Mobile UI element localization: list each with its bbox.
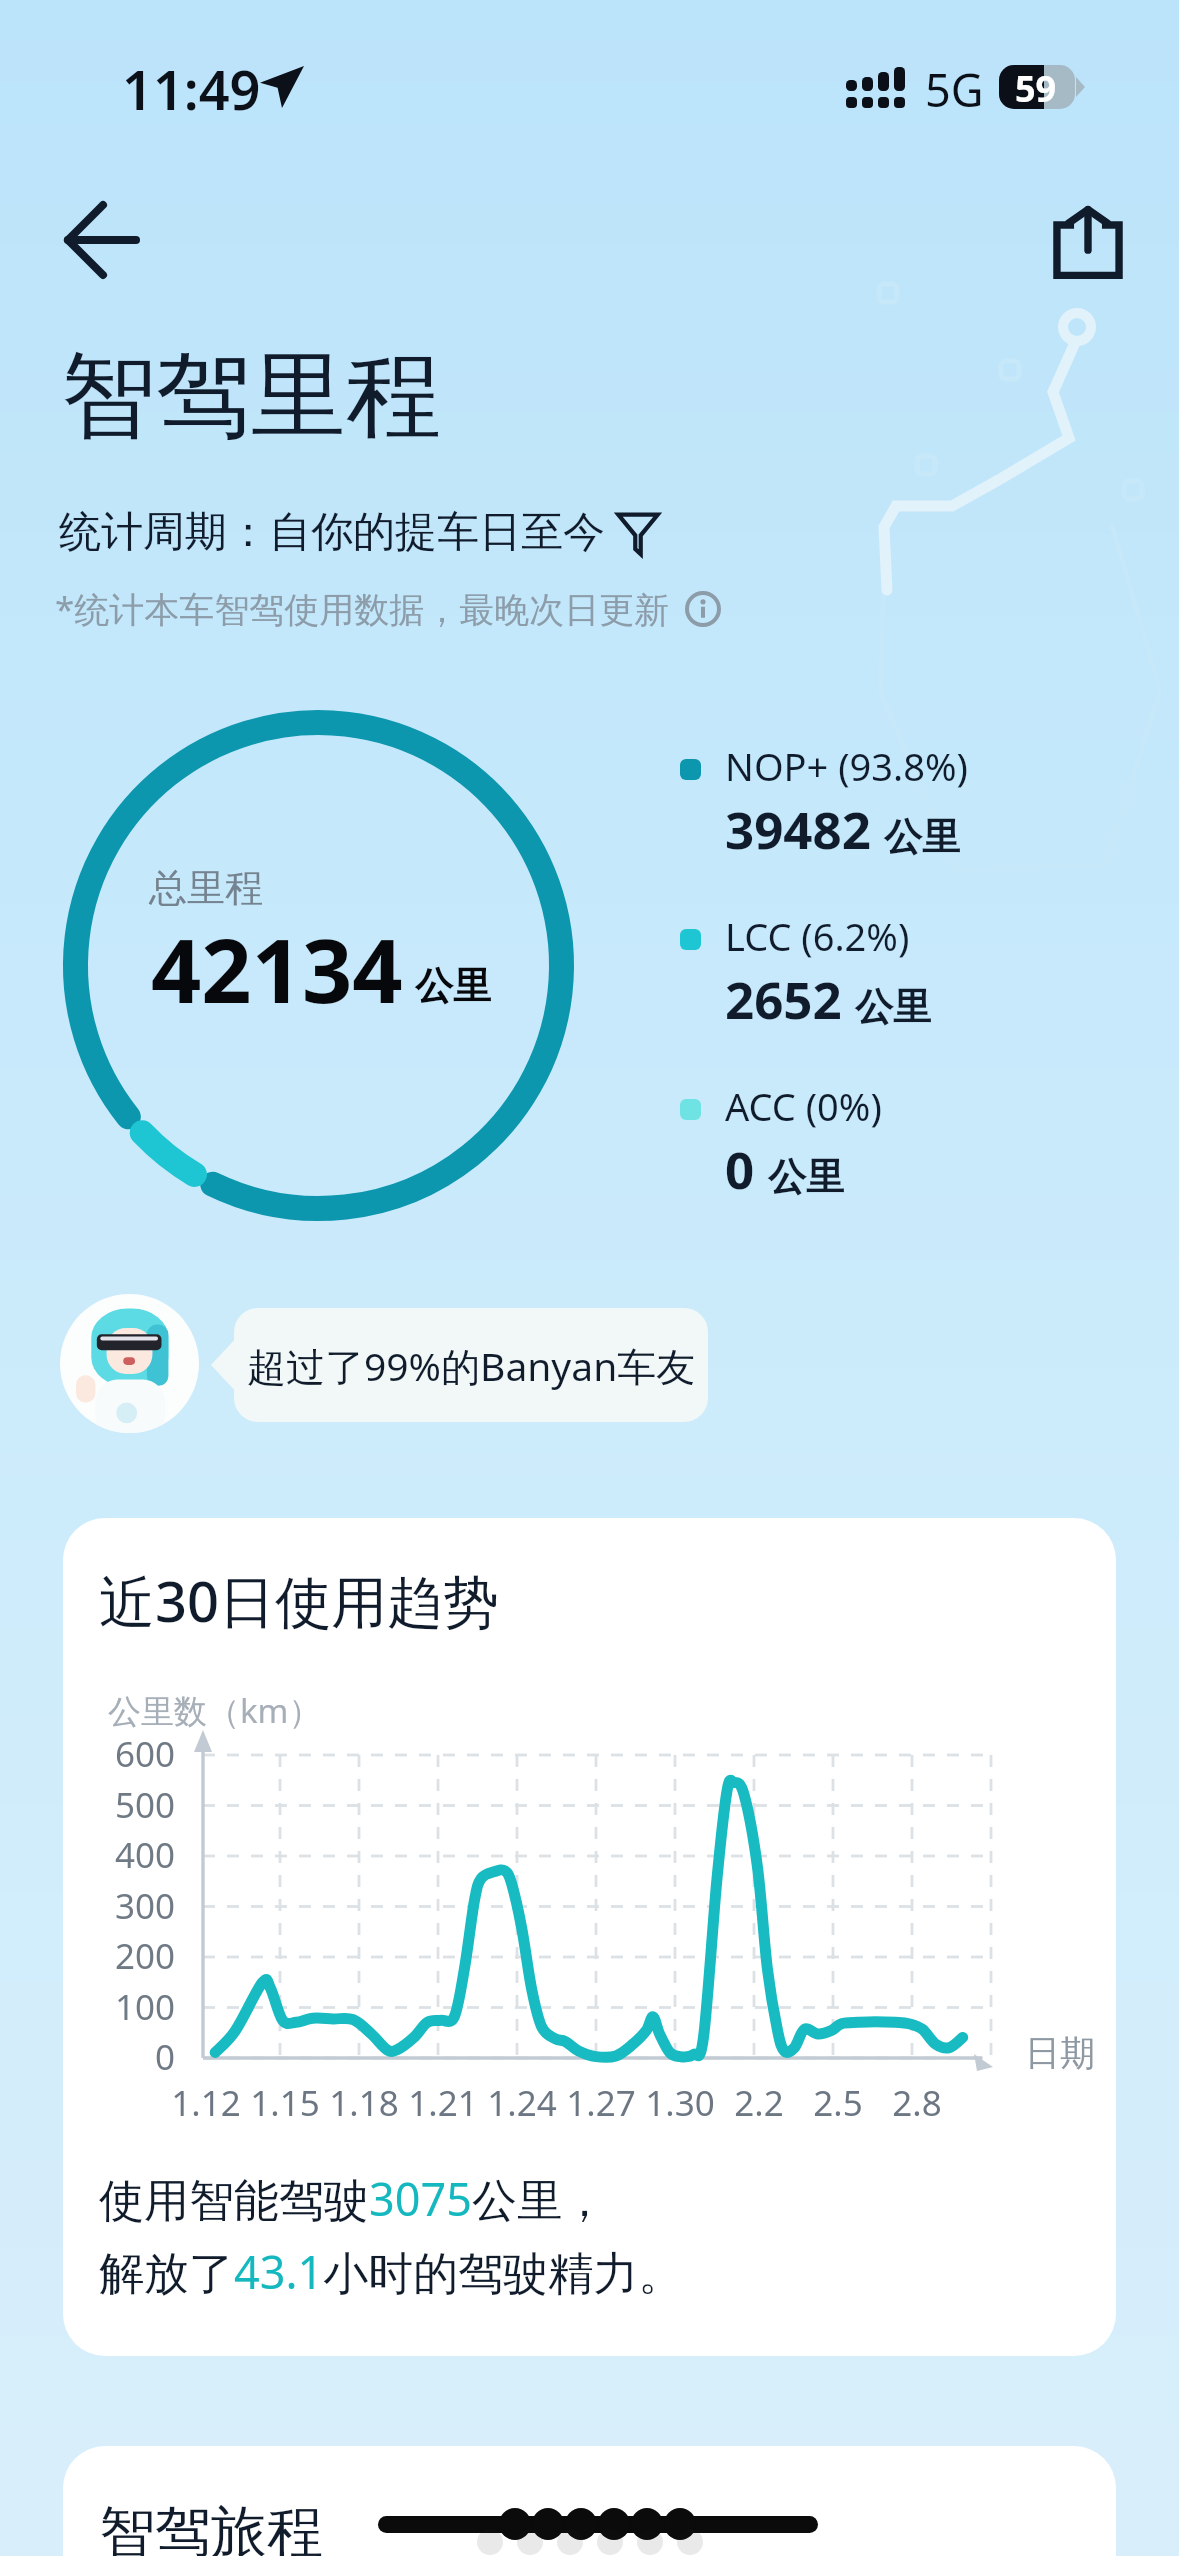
staticText: 近30日使用趋势 [99, 1562, 500, 1638]
staticText: 使用智能驾驶3075公里， [99, 2168, 607, 2229]
staticText: 日期 [1025, 2031, 1095, 2075]
button[interactable]: 统计周期：自你的提车日至今 [59, 506, 659, 559]
staticText: 总里程 [149, 864, 263, 912]
button[interactable]: Total mileage chart [63, 710, 574, 1221]
staticText: 39482 [725, 794, 871, 863]
staticText: 42134 [151, 909, 403, 1029]
staticText: 1.12 [151, 2079, 261, 2127]
staticText: 0 [75, 2033, 175, 2081]
button[interactable]: 超过了99%的Banyan车友 [234, 1308, 708, 1422]
button[interactable]: Share [1043, 193, 1133, 283]
staticText: 59 [1015, 64, 1057, 108]
staticText: 公里数（km） [108, 1688, 322, 1733]
staticText: *统计本车智驾使用数据，最晚次日更新 [55, 585, 670, 633]
staticText: 公里 [768, 1153, 844, 1201]
staticText: 公里 [855, 983, 931, 1031]
staticText: 1.24 [467, 2079, 577, 2127]
staticText: NOP+ (93.8%) [725, 740, 968, 792]
staticText: 11:49 [122, 52, 261, 126]
staticText: 公里 [884, 813, 960, 861]
button[interactable]: Back [48, 185, 158, 295]
staticText: 300 [75, 1882, 175, 1930]
button[interactable]: 近30日使用趋势 [63, 1518, 1116, 2356]
staticText: 0 [725, 1134, 755, 1203]
button[interactable]: LCC (6.2%) [680, 910, 931, 1033]
staticText: LCC (6.2%) [725, 910, 910, 962]
staticText: 2.8 [862, 2079, 972, 2127]
staticText: 100 [75, 1983, 175, 2031]
staticText: 400 [75, 1831, 175, 1879]
staticText: 200 [75, 1932, 175, 1980]
staticText: 公里 [415, 962, 491, 1010]
button[interactable]: NOP+ (93.8%) [680, 740, 968, 863]
button[interactable]: ACC (0%) [680, 1080, 882, 1203]
staticText: 统计周期：自你的提车日至今 [59, 506, 605, 559]
staticText: 智驾里程 [61, 337, 441, 457]
staticText: 智驾旅程 [99, 2497, 323, 2556]
staticText: 2.5 [783, 2079, 893, 2127]
staticText: 2652 [725, 964, 842, 1033]
staticText: 1.15 [230, 2079, 340, 2127]
staticText: 解放了43.1小时的驾驶精力。 [99, 2241, 684, 2302]
staticText: 1.21 [388, 2079, 498, 2127]
staticText: 500 [75, 1781, 175, 1829]
staticText: 2.2 [704, 2079, 814, 2127]
staticText: 600 [75, 1730, 175, 1778]
button[interactable]: 智驾旅程 [63, 2446, 1116, 2556]
staticText: 1.30 [625, 2079, 735, 2127]
staticText: 5G [925, 59, 984, 120]
staticText: ACC (0%) [725, 1080, 882, 1132]
staticText: 1.27 [546, 2079, 656, 2127]
button[interactable]: *统计本车智驾使用数据，最晚次日更新 [55, 585, 722, 633]
staticText: 超过了99%的Banyan车友 [247, 1339, 696, 1392]
staticText: 1.18 [309, 2079, 419, 2127]
